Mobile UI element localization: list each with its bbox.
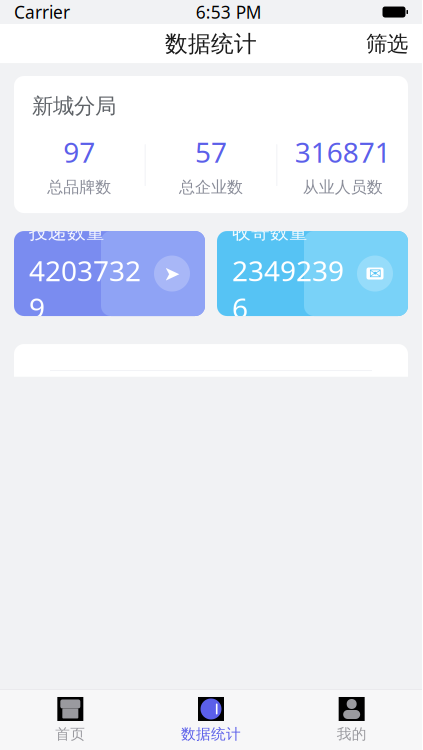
button[interactable]: 筛选 (352, 22, 422, 66)
staticText: ➤ (163, 262, 180, 285)
staticText: 6:53 PM (196, 0, 262, 23)
button[interactable]: 收寄数量 (217, 231, 408, 316)
staticText: 总企业数 (179, 177, 243, 197)
staticText: 投递数量 (29, 221, 105, 244)
staticText: 316871 (295, 133, 391, 170)
button[interactable]: 投递数量 (14, 231, 205, 316)
staticText: 新城分局 (32, 93, 116, 119)
staticText: 数据统计 (165, 30, 257, 58)
staticText: ✉ (369, 265, 381, 282)
staticText: 57 (195, 133, 227, 170)
staticText: 23492396 (232, 252, 344, 326)
staticText: 总品牌数 (47, 177, 111, 197)
staticText: 筛选 (366, 31, 408, 57)
staticText: Carrier (14, 0, 70, 23)
button[interactable]: 数据统计 (141, 697, 281, 743)
staticText: 首页 (55, 725, 85, 743)
staticText: 97 (63, 133, 95, 170)
staticText: 我的 (337, 725, 367, 743)
staticText: 收寄数量 (232, 221, 308, 244)
button[interactable]: 我的 (281, 697, 422, 743)
staticText: 从业人员数 (303, 177, 383, 197)
button[interactable]: 首页 (0, 697, 141, 743)
staticText: 42037329 (29, 252, 141, 326)
staticText: 数据统计 (181, 725, 241, 743)
